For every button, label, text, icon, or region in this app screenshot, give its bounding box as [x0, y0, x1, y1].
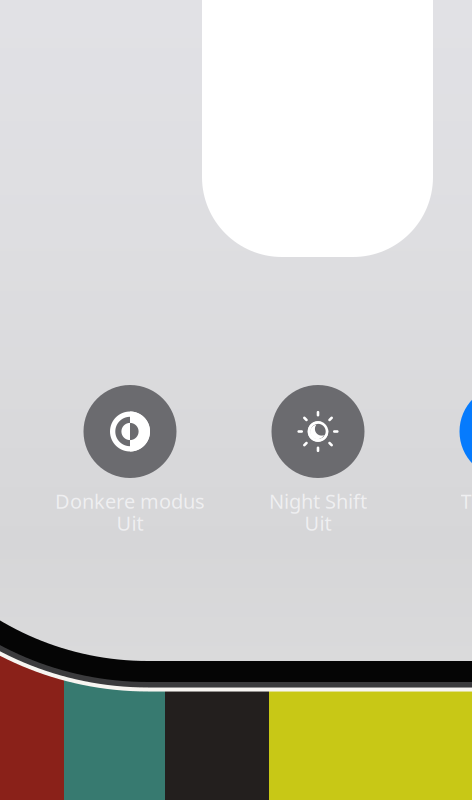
- staticText: True Tone: [460, 488, 472, 514]
- staticText: Night Shift: [269, 488, 367, 514]
- staticText: Uit: [304, 510, 331, 536]
- button[interactable]: True Tone: [413, 385, 472, 537]
- staticText: Uit: [116, 510, 143, 536]
- button[interactable]: Donkere modus: [37, 385, 223, 537]
- button[interactable]: Night Shift: [225, 385, 411, 537]
- staticText: Donkere modus: [55, 488, 205, 514]
